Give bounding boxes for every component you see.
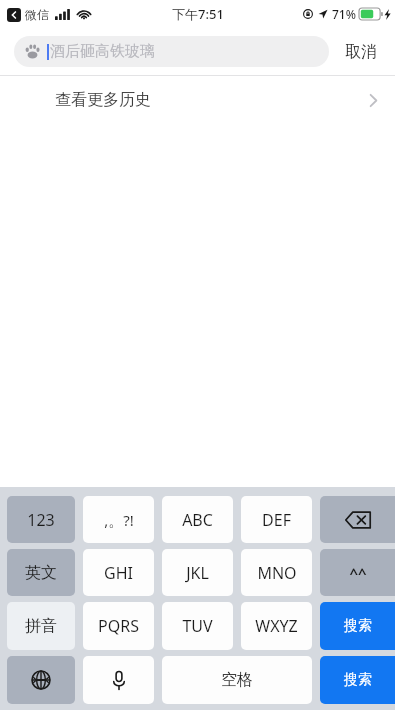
button[interactable]: GHI: [83, 549, 154, 596]
staticText: 71%: [332, 6, 356, 22]
button[interactable]: 查看更多历史: [0, 76, 395, 124]
button[interactable]: ,。?!: [83, 496, 154, 543]
button[interactable]: 取消: [341, 36, 381, 68]
button[interactable]: 123: [7, 496, 75, 543]
button[interactable]: Voice input: [83, 656, 154, 704]
button[interactable]: DEF: [241, 496, 312, 543]
button[interactable]: 酒后砸高铁玻璃: [14, 36, 329, 67]
button[interactable]: MNO: [241, 549, 312, 596]
button[interactable]: Backspace: [320, 496, 395, 543]
staticText: MNO: [257, 562, 297, 584]
staticText: 123: [27, 509, 55, 531]
button[interactable]: PQRS: [83, 602, 154, 650]
staticText: 查看更多历史: [55, 90, 151, 110]
staticText: 下午7:51: [172, 5, 224, 23]
button[interactable]: TUV: [162, 602, 233, 650]
button[interactable]: Back: [7, 8, 21, 22]
staticText: 搜索: [344, 671, 372, 689]
staticText: ,。?!: [104, 510, 134, 530]
button[interactable]: JKL: [162, 549, 233, 596]
button[interactable]: 搜索: [320, 602, 395, 650]
staticText: 拼音: [25, 616, 57, 636]
staticText: 微信: [25, 7, 49, 22]
staticText: ABC: [182, 509, 213, 531]
staticText: JKL: [186, 562, 209, 584]
staticText: PQRS: [98, 615, 139, 637]
button[interactable]: WXYZ: [241, 602, 312, 650]
staticText: WXYZ: [255, 615, 298, 637]
staticText: 取消: [345, 42, 377, 62]
staticText: 空格: [221, 670, 253, 690]
button[interactable]: 空格: [162, 656, 312, 704]
staticText: 搜索: [344, 617, 372, 635]
button[interactable]: ABC: [162, 496, 233, 543]
staticText: 英文: [25, 563, 57, 583]
button[interactable]: 英文: [7, 549, 75, 596]
button[interactable]: 拼音: [7, 602, 75, 650]
staticText: DEF: [262, 509, 291, 531]
staticText: TUV: [182, 615, 213, 637]
staticText: ^^: [349, 563, 367, 583]
button[interactable]: Switch keyboard: [7, 656, 75, 704]
button[interactable]: ^^: [320, 549, 395, 596]
staticText: 酒后砸高铁玻璃: [50, 42, 155, 61]
button[interactable]: 搜索: [320, 656, 395, 704]
staticText: GHI: [104, 562, 133, 584]
